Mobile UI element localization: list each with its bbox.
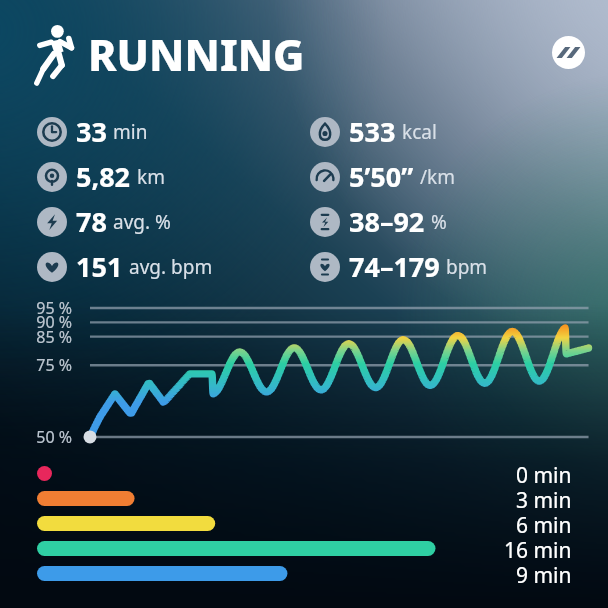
staticText: RUNNING bbox=[88, 25, 305, 84]
staticText: min bbox=[113, 119, 148, 145]
button[interactable]: 0 min bbox=[37, 461, 572, 486]
staticText: 5,82 bbox=[76, 158, 131, 195]
button[interactable]: 533 bbox=[310, 109, 608, 154]
button[interactable]: 78 bbox=[37, 199, 304, 244]
staticText: 33 bbox=[76, 113, 107, 150]
staticText: 78 bbox=[76, 203, 107, 240]
staticText: 38–92 bbox=[349, 203, 425, 240]
button[interactable]: 9 min bbox=[37, 561, 572, 586]
staticText: 74–179 bbox=[349, 248, 440, 285]
button[interactable]: 6 min bbox=[37, 511, 572, 536]
staticText: 75 % bbox=[0, 354, 72, 376]
staticText: 95 % bbox=[0, 297, 72, 319]
staticText: 9 min bbox=[516, 561, 572, 586]
button[interactable]: 5,82 bbox=[37, 154, 304, 199]
staticText: 0 min bbox=[516, 461, 572, 486]
button[interactable]: 3 min bbox=[37, 486, 572, 511]
staticText: 85 % bbox=[0, 326, 72, 348]
button[interactable]: 33 bbox=[37, 109, 304, 154]
staticText: 50 % bbox=[0, 426, 72, 448]
staticText: 3 min bbox=[516, 486, 572, 511]
staticText: /km bbox=[420, 164, 455, 190]
staticText: 5’50” bbox=[349, 158, 414, 195]
staticText: % bbox=[431, 209, 447, 235]
staticText: kcal bbox=[402, 119, 437, 145]
staticText: avg. % bbox=[113, 209, 171, 235]
staticText: 151 bbox=[76, 248, 123, 285]
staticText: 16 min bbox=[504, 536, 572, 561]
button[interactable]: 151 bbox=[37, 244, 304, 289]
button[interactable]: App logo bbox=[552, 36, 585, 69]
staticText: km bbox=[137, 164, 165, 190]
staticText: 533 bbox=[349, 113, 396, 150]
button[interactable]: 38–92 bbox=[310, 199, 608, 244]
button[interactable]: 16 min bbox=[37, 536, 572, 561]
button[interactable]: 74–179 bbox=[310, 244, 608, 289]
staticText: 90 % bbox=[0, 311, 72, 333]
staticText: avg. bpm bbox=[129, 254, 213, 280]
button[interactable]: 5’50” bbox=[310, 154, 608, 199]
staticText: 6 min bbox=[516, 511, 572, 536]
staticText: bpm bbox=[446, 254, 488, 280]
